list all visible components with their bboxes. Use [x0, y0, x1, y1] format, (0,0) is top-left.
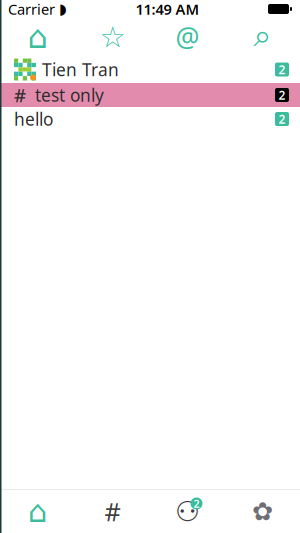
staticText: @ — [175, 19, 199, 55]
button[interactable]: hello — [0, 107, 300, 131]
staticText: Tien Tran — [42, 58, 119, 81]
button[interactable]: Direct Messages, 2 unread — [150, 490, 225, 532]
button[interactable]: # — [0, 83, 300, 107]
staticText: ⌂ — [27, 19, 47, 55]
staticText: ✿ — [252, 497, 273, 526]
staticText: 2 — [278, 61, 285, 77]
button[interactable]: Settings — [225, 490, 300, 532]
button[interactable]: Search — [225, 18, 300, 56]
staticText: 2 — [278, 111, 285, 127]
staticText: test only — [35, 83, 104, 106]
staticText: ☆ — [99, 20, 125, 54]
staticText: Carrier — [8, 0, 55, 19]
button[interactable]: Tien Tran — [0, 56, 300, 83]
button[interactable]: Channels — [75, 490, 150, 532]
staticText: ⚇ — [175, 496, 200, 527]
staticText: ⌕ — [253, 21, 271, 53]
staticText: # — [104, 495, 120, 528]
staticText: ⌂ — [28, 494, 47, 529]
button[interactable]: Starred — [75, 18, 150, 56]
staticText: ◗ — [59, 1, 67, 17]
button[interactable]: Home — [0, 490, 75, 532]
button[interactable]: Mentions — [150, 18, 225, 56]
staticText: 2 — [193, 496, 199, 511]
staticText: 11:49 AM — [135, 0, 199, 19]
staticText: # — [14, 83, 26, 107]
button[interactable]: Home — [0, 18, 75, 56]
staticText: 2 — [278, 87, 285, 103]
staticText: hello — [14, 107, 53, 130]
